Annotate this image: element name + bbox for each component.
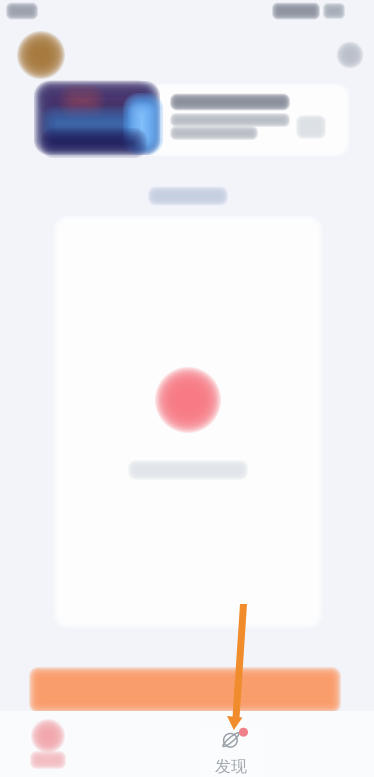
staticText: 发现 xyxy=(215,757,247,776)
button[interactable]: 发现 xyxy=(199,728,263,777)
